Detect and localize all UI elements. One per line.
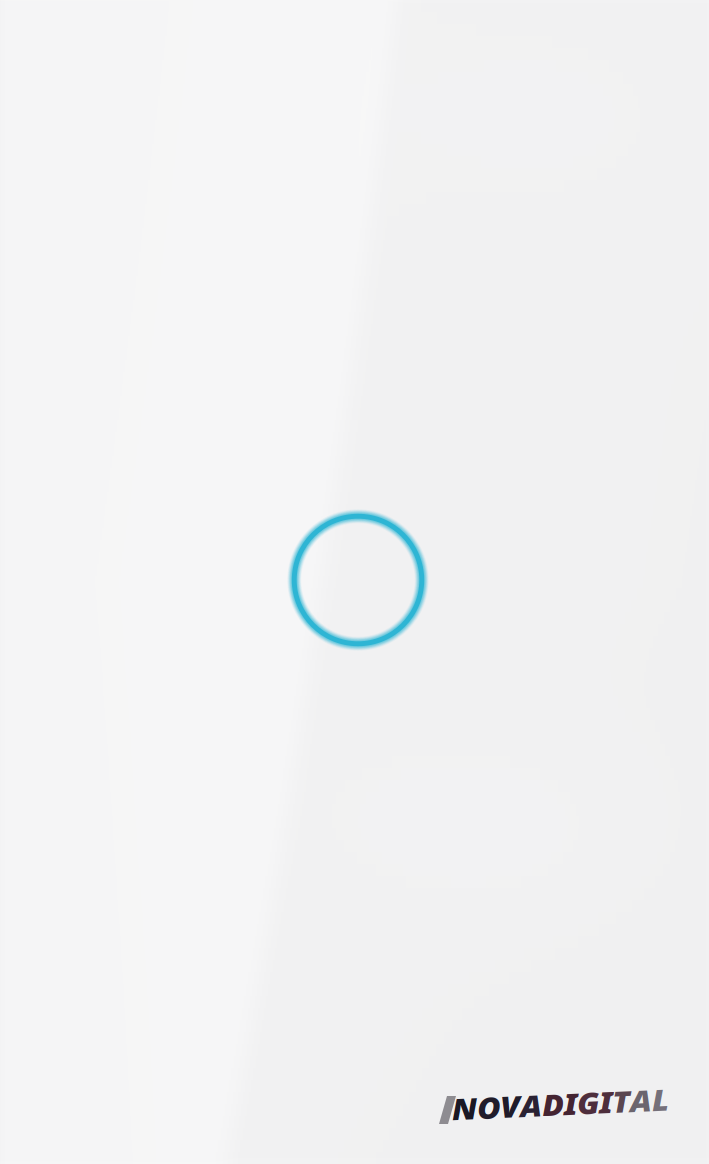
staticText: N <box>461 1084 484 1123</box>
staticText: OV <box>484 1084 523 1123</box>
staticText: GI <box>575 1084 607 1123</box>
staticText: DI <box>543 1084 575 1123</box>
staticText: A <box>623 1084 643 1123</box>
staticText: L <box>643 1084 658 1123</box>
staticText: T <box>607 1084 623 1123</box>
button[interactable]: Touch switch <box>283 505 433 655</box>
staticText: A <box>523 1084 543 1123</box>
